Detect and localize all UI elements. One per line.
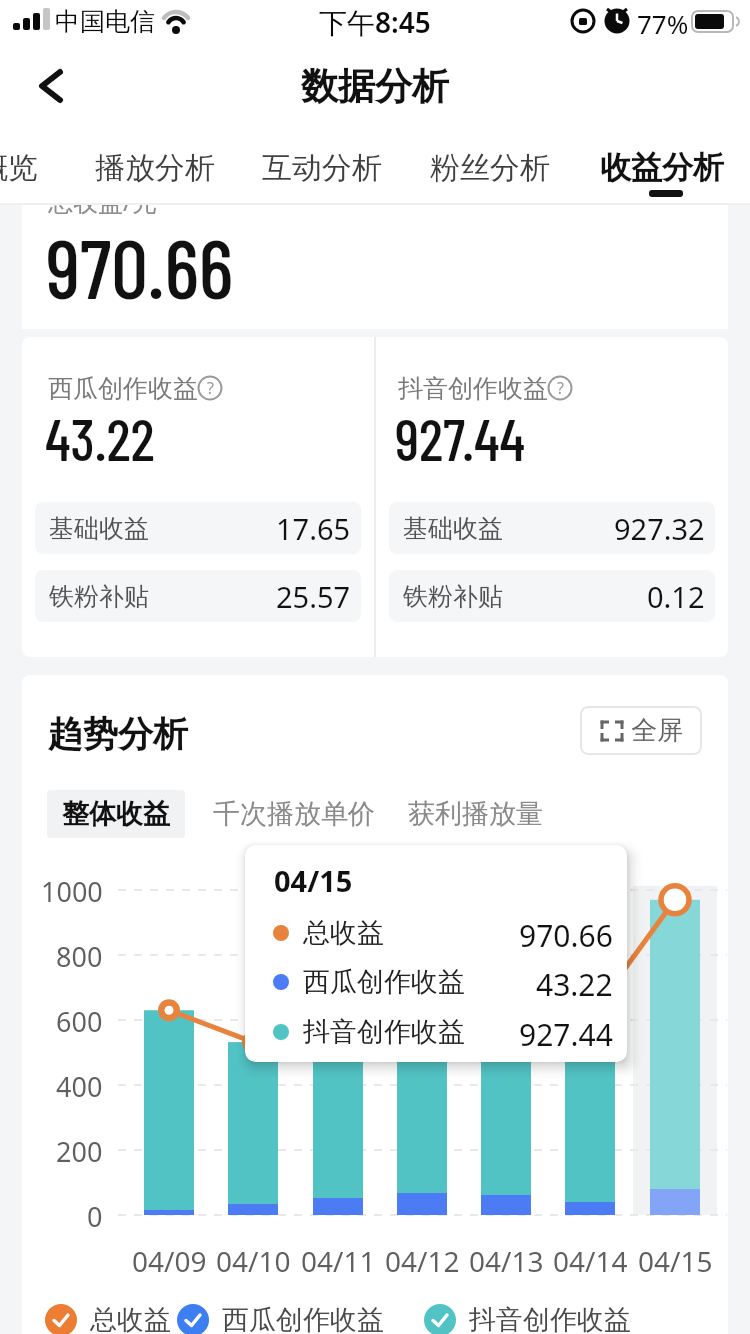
staticText: 600: [56, 1003, 103, 1037]
staticText: 927.44: [519, 1014, 613, 1050]
staticText: 抖音创作收益: [398, 373, 548, 404]
staticText: 17.65: [276, 509, 351, 548]
staticText: 下午8:45: [319, 3, 431, 41]
button[interactable]: 基础收益: [389, 502, 715, 554]
staticText: 播放分析: [95, 149, 215, 187]
staticText: 西瓜创作收益: [222, 1303, 384, 1334]
staticText: 77%: [637, 6, 689, 41]
staticText: 04/11: [301, 1242, 376, 1278]
staticText: 04/13: [469, 1242, 544, 1278]
staticText: 西瓜创作收益: [303, 965, 465, 999]
staticText: 铁粉补贴: [403, 581, 503, 612]
staticText: 04/15: [638, 1242, 713, 1278]
button[interactable]: 收益分析: [600, 130, 724, 205]
staticText: 获利播放量: [408, 797, 543, 831]
button[interactable]: 整体收益: [47, 790, 185, 838]
staticText: 总收益/元: [48, 184, 158, 218]
staticText: 抖音创作收益: [303, 1015, 465, 1049]
staticText: 970.66: [46, 217, 234, 315]
staticText: 中国电信: [55, 6, 155, 37]
staticText: 0: [87, 1198, 103, 1232]
staticText: 粉丝分析: [430, 149, 550, 187]
staticText: 互动分析: [262, 149, 382, 187]
staticText: 04/10: [216, 1242, 291, 1278]
button[interactable]: 千次播放单价: [207, 790, 381, 838]
staticText: 基础收益: [403, 513, 503, 544]
staticText: 04/12: [385, 1242, 460, 1278]
staticText: 1000: [41, 873, 103, 907]
staticText: 千次播放单价: [213, 797, 375, 831]
staticText: 04/09: [132, 1242, 207, 1278]
button[interactable]: 基础收益: [35, 502, 361, 554]
button[interactable]: 互动分析: [262, 130, 382, 205]
staticText: ?: [207, 377, 214, 399]
staticText: 整体收益: [62, 797, 170, 831]
staticText: 抖音创作收益: [469, 1303, 631, 1334]
button[interactable]: 西瓜创作收益: [177, 1303, 384, 1334]
staticText: 200: [56, 1133, 103, 1167]
button[interactable]: 抖音创作收益: [424, 1303, 631, 1334]
staticText: 趋势分析: [48, 712, 188, 756]
staticText: 25.57: [276, 577, 351, 616]
staticText: 400: [56, 1068, 103, 1102]
staticText: ?: [557, 377, 564, 399]
staticText: 全屏: [631, 714, 683, 747]
staticText: 总收益: [303, 916, 384, 950]
staticText: 970.66: [519, 915, 613, 951]
staticText: 927.44: [395, 403, 525, 473]
staticText: 概览: [0, 149, 38, 187]
staticText: 基础收益: [49, 513, 149, 544]
staticText: 04/15: [274, 861, 353, 900]
staticText: 43.22: [45, 403, 155, 473]
staticText: 西瓜创作收益: [48, 373, 198, 404]
button[interactable]: 获利播放量: [392, 790, 558, 838]
button[interactable]: 总收益: [45, 1303, 171, 1334]
staticText: 数据分析: [301, 63, 449, 110]
staticText: 0.12: [647, 577, 705, 616]
button[interactable]: 粉丝分析: [430, 130, 550, 205]
button[interactable]: [28, 60, 80, 112]
staticText: 04/14: [553, 1242, 628, 1278]
button[interactable]: 播放分析: [95, 130, 215, 205]
staticText: 总收益: [90, 1303, 171, 1334]
staticText: 铁粉补贴: [49, 581, 149, 612]
button[interactable]: 铁粉补贴: [389, 570, 715, 622]
staticText: 43.22: [536, 964, 613, 1000]
button[interactable]: 全屏: [580, 706, 702, 755]
button[interactable]: 概览: [0, 130, 38, 205]
staticText: 927.32: [614, 509, 705, 548]
staticText: 收益分析: [600, 148, 724, 187]
staticText: 800: [56, 938, 103, 972]
button[interactable]: 铁粉补贴: [35, 570, 361, 622]
